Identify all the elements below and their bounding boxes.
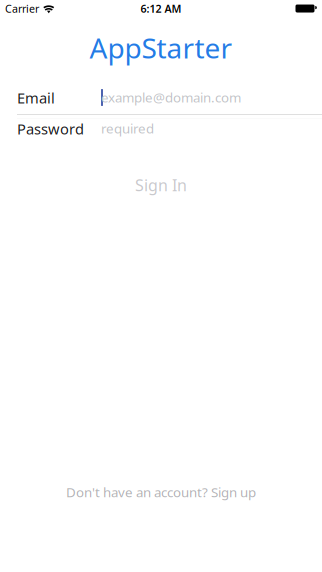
button[interactable]: Don't have an account? Sign up [0,483,322,501]
staticText: Carrier [5,1,39,16]
staticText: Sign In [135,174,187,196]
staticText: Email [17,88,55,107]
button[interactable]: Password [0,119,322,139]
staticText: Password [17,119,84,138]
button[interactable]: Sign In [0,174,322,196]
staticText: Don't have an account? Sign up [66,483,256,501]
staticText: example@domain.com [101,88,241,106]
staticText: required [101,119,154,137]
staticText: 6:12 AM [140,1,181,16]
staticText: AppStarter [89,29,232,66]
button[interactable]: Email [0,88,322,108]
